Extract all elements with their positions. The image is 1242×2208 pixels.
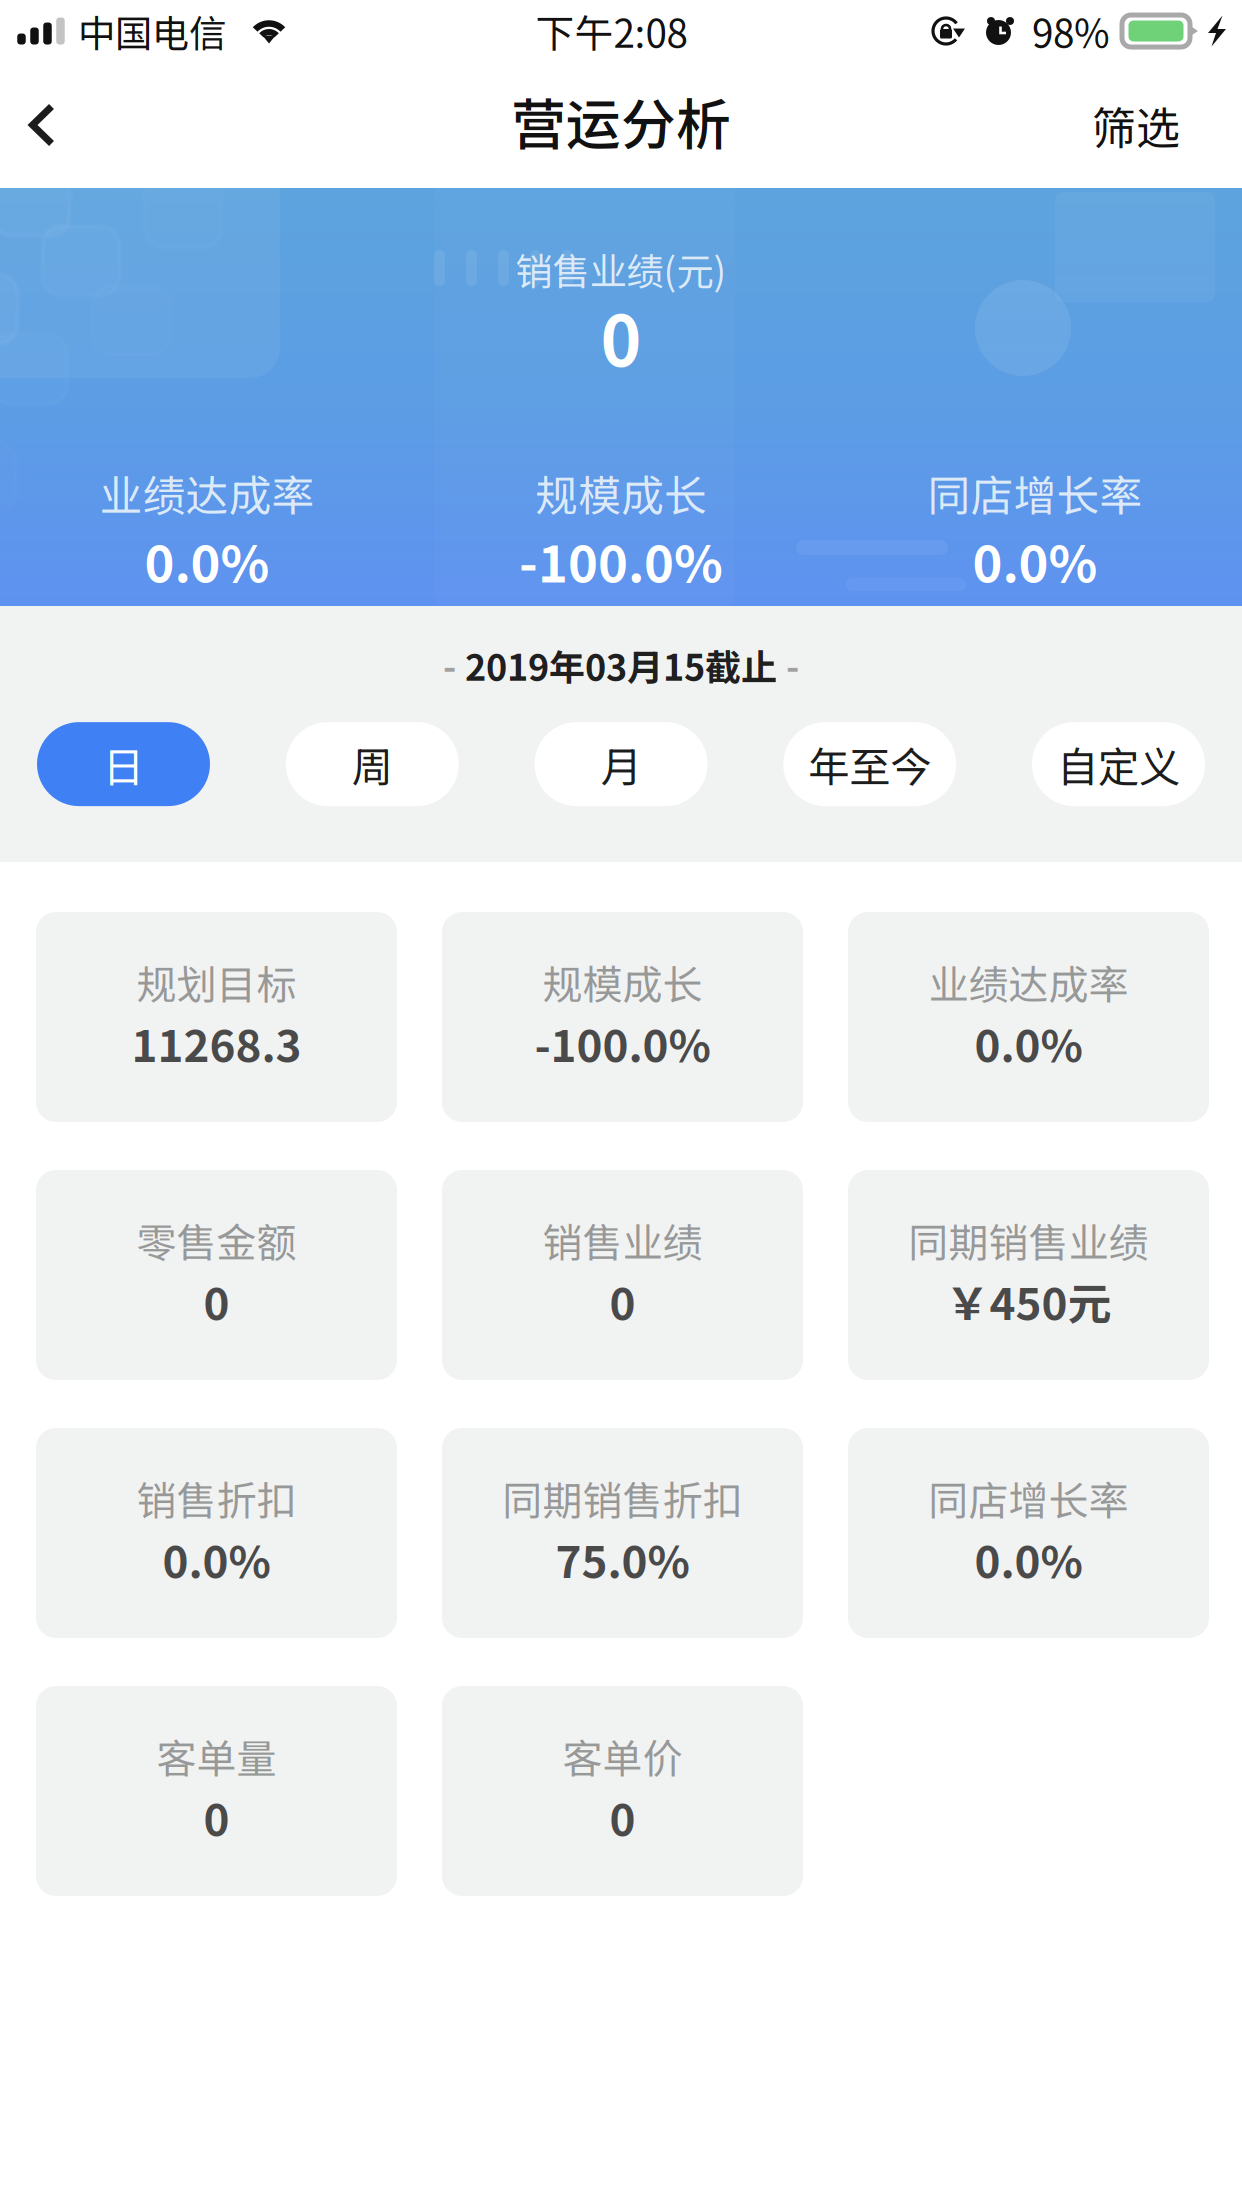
staticText: 0 (203, 1269, 229, 1333)
staticText: 规模成长 (542, 953, 702, 1011)
staticText: 0.0% (974, 1527, 1082, 1591)
staticText: 同期销售业绩 (908, 1211, 1148, 1269)
staticText: 0 (600, 286, 641, 386)
button[interactable]: 周 (286, 722, 459, 806)
staticText: 业绩达成率 (928, 953, 1128, 1011)
staticText: 销售折扣 (136, 1469, 296, 1527)
staticText: - (786, 639, 799, 691)
staticText: 周 (352, 734, 393, 794)
staticText: 中国电信 (78, 4, 226, 58)
staticText: 75.0% (555, 1527, 689, 1591)
button[interactable]: 销售业绩 (442, 1170, 803, 1380)
button[interactable]: 同期销售业绩 (848, 1170, 1209, 1380)
staticText: -100.0% (534, 1011, 710, 1075)
staticText: 规模成长 (535, 462, 707, 524)
staticText: 客单价 (562, 1727, 682, 1785)
button[interactable]: 零售金额 (36, 1170, 397, 1380)
staticText: 自定义 (1057, 734, 1180, 794)
staticText: 销售业绩 (542, 1211, 702, 1269)
button[interactable]: 日 (37, 722, 210, 806)
button[interactable]: 业绩达成率 (848, 912, 1209, 1122)
staticText: 销售业绩(元) (515, 242, 726, 296)
staticText: 月 (600, 734, 641, 794)
staticText: 同期销售折扣 (502, 1469, 742, 1527)
button[interactable]: 规划目标 (36, 912, 397, 1122)
button[interactable]: 客单量 (36, 1686, 397, 1896)
staticText: 2019年03月15截止 (465, 639, 777, 691)
staticText: -100.0% (519, 524, 723, 597)
staticText: 业绩达成率 (99, 462, 314, 524)
button[interactable]: 客单价 (442, 1686, 803, 1896)
staticText: - (443, 639, 456, 691)
staticText: 98% (1032, 3, 1110, 59)
staticText: 同店增长率 (928, 1469, 1128, 1527)
button[interactable]: 同期销售折扣 (442, 1428, 803, 1638)
button[interactable]: Back (0, 62, 102, 188)
button[interactable]: 同店增长率 (848, 1428, 1209, 1638)
staticText: 营运分析 (511, 81, 731, 160)
staticText: 0.0% (972, 524, 1097, 597)
staticText: 同店增长率 (927, 462, 1142, 524)
button[interactable]: 年至今 (783, 722, 956, 806)
staticText: 0.0% (144, 524, 269, 597)
button[interactable]: 月 (534, 722, 707, 806)
staticText: 日 (103, 734, 144, 794)
staticText: 规划目标 (136, 953, 296, 1011)
staticText: 下午2:08 (535, 3, 687, 59)
staticText: ￥450元 (945, 1269, 1111, 1333)
staticText: 零售金额 (136, 1211, 296, 1269)
staticText: 年至今 (808, 734, 931, 794)
staticText: 筛选 (1092, 93, 1180, 157)
button[interactable]: 筛选 (1092, 62, 1242, 188)
staticText: 11268.3 (131, 1011, 301, 1075)
staticText: 0.0% (974, 1011, 1082, 1075)
staticText: 0 (609, 1785, 635, 1849)
staticText: 0.0% (162, 1527, 270, 1591)
button[interactable]: 规模成长 (442, 912, 803, 1122)
button[interactable]: 销售折扣 (36, 1428, 397, 1638)
button[interactable]: 自定义 (1032, 722, 1205, 806)
staticText: 客单量 (156, 1727, 276, 1785)
staticText: 0 (609, 1269, 635, 1333)
staticText: 0 (203, 1785, 229, 1849)
